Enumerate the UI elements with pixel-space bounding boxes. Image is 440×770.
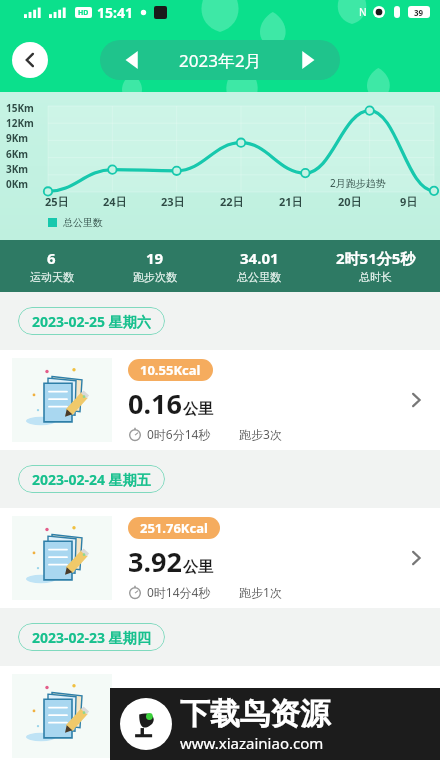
staticText: 0Km — [6, 177, 29, 191]
staticText: 251.76Kcal — [140, 519, 208, 537]
staticText: 跑步3次 — [239, 426, 282, 442]
staticText: 0时14分4秒 — [147, 584, 211, 600]
staticText: 9Km — [6, 131, 29, 145]
staticText: 3Km — [6, 162, 29, 176]
staticText: 12Km — [6, 116, 34, 130]
staticText: 总公里数 — [237, 270, 281, 284]
staticText: 15Km — [6, 101, 34, 115]
staticText: 3.92 — [128, 543, 182, 580]
staticText: 39 — [414, 7, 424, 18]
button[interactable]: Back — [12, 42, 48, 78]
button[interactable]: Previous month — [100, 40, 164, 80]
staticText: 总公里数 — [63, 216, 103, 229]
staticText: www.xiazainiao.com — [180, 733, 324, 753]
staticText: 2023-02-25 星期六 — [32, 312, 151, 331]
button[interactable]: Next month — [276, 40, 340, 80]
staticText: 20日 — [338, 194, 362, 209]
staticText: 2023年2月 — [179, 49, 262, 72]
staticText: 10.55Kcal — [140, 361, 201, 379]
staticText: 9日 — [400, 194, 418, 209]
staticText: 跑步次数 — [133, 270, 177, 284]
staticText: 15:41 — [97, 3, 133, 22]
staticText: 24日 — [103, 194, 127, 209]
staticText: 2时51分5秒 — [336, 248, 416, 268]
staticText: 2023-02-23 星期四 — [32, 628, 151, 647]
staticText: 0时6分14秒 — [147, 426, 211, 442]
button[interactable]: 2023-02-23 星期四 — [18, 623, 165, 651]
button[interactable]: Open details — [392, 534, 440, 582]
staticText: 2023-02-24 星期五 — [32, 470, 151, 489]
staticText: 22日 — [220, 194, 244, 209]
staticText: 公里 — [183, 558, 213, 577]
button[interactable]: Open details — [392, 376, 440, 424]
button[interactable]: 2023-02-25 星期六 — [18, 307, 165, 335]
staticText: 23日 — [161, 194, 185, 209]
staticText: 0.16 — [128, 385, 182, 422]
staticText: 21日 — [279, 194, 303, 209]
button[interactable]: 251.76Kcal — [0, 508, 440, 608]
staticText: 6Km — [6, 147, 29, 161]
staticText: 跑步1次 — [239, 584, 282, 600]
staticText: 2月跑步趋势 — [330, 176, 386, 190]
button[interactable]: 10.55Kcal — [0, 350, 440, 450]
staticText: 19 — [146, 248, 164, 268]
staticText: N — [359, 5, 367, 19]
staticText: 6 — [47, 248, 56, 268]
button[interactable]: 2023-02-24 星期五 — [18, 465, 165, 493]
staticText: 公里 — [183, 400, 213, 419]
staticText: 34.01 — [240, 248, 279, 268]
staticText: 25日 — [45, 194, 69, 209]
staticText: 运动天数 — [30, 270, 74, 284]
staticText: 总时长 — [359, 270, 392, 284]
button[interactable]: Open details — [0, 666, 440, 766]
staticText: 下载鸟资源 — [180, 695, 330, 733]
staticText: HD — [78, 8, 89, 18]
